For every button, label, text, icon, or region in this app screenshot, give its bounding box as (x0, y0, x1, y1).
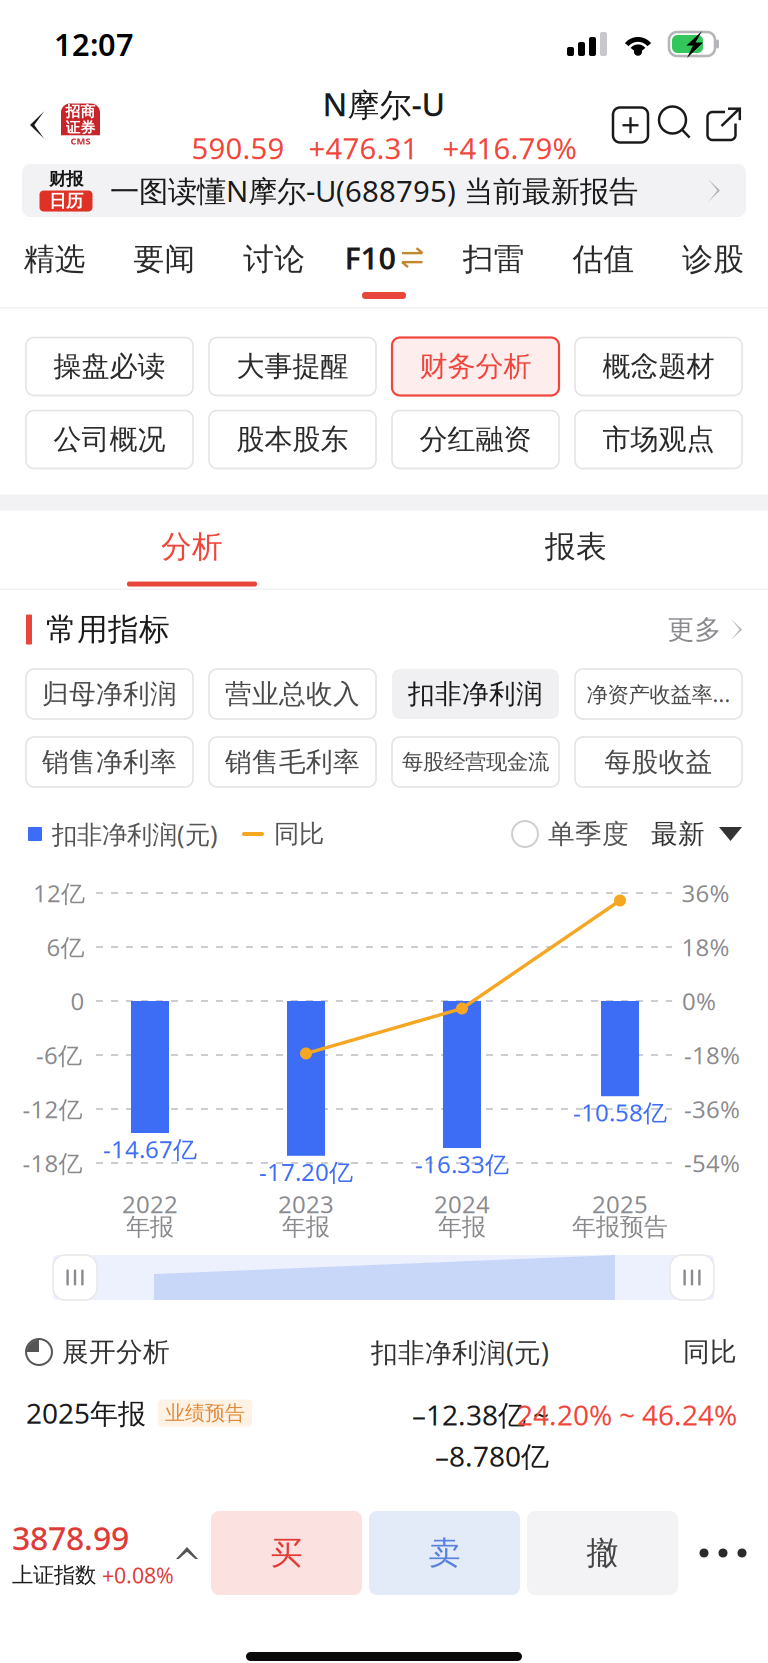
staticText: 市场观点 (602, 422, 714, 457)
staticText: 分析 (161, 528, 223, 565)
staticText: 大事提醒 (236, 349, 348, 384)
button[interactable]: 分红融资 (392, 410, 559, 468)
button[interactable]: 最新 (629, 818, 768, 850)
staticText: +416.79% (442, 128, 576, 167)
button[interactable]: Search (654, 106, 701, 143)
staticText: 最新 (651, 818, 705, 850)
button[interactable]: F10 (329, 221, 439, 307)
staticText: -18亿 (22, 1147, 82, 1179)
staticText: 诊股 (682, 240, 744, 278)
button[interactable]: 操盘必读 (26, 337, 193, 395)
staticText: 36% (681, 877, 729, 909)
staticText: 概念题材 (602, 349, 714, 384)
staticText: N摩尔-U (322, 83, 445, 125)
staticText: 操盘必读 (53, 349, 165, 384)
staticText: 年报 (126, 1212, 174, 1242)
staticText: -10.58亿 (573, 1096, 667, 1128)
staticText: 12:07 (54, 24, 134, 64)
staticText: 0 (70, 985, 84, 1017)
staticText: 公司概况 (53, 422, 165, 457)
button[interactable]: 财报 (22, 164, 746, 217)
staticText: –8.780亿 (435, 1437, 549, 1474)
staticText: 扫雷 (463, 240, 525, 278)
staticText: 年报预告 (572, 1212, 668, 1242)
button[interactable]: 买 (211, 1511, 362, 1595)
staticText: 讨论 (243, 240, 305, 278)
staticText: 销售净利率 (42, 746, 177, 778)
staticText: 上证指数 (12, 1562, 96, 1588)
button[interactable]: 卖 (369, 1511, 520, 1595)
button[interactable]: 市场观点 (575, 410, 742, 468)
button[interactable]: 财务分析 (392, 337, 559, 395)
staticText: -36% (684, 1093, 740, 1125)
button[interactable]: 3878.99 (0, 1499, 198, 1607)
staticText: 净资产收益率... (586, 680, 730, 708)
staticText: 590.59 (191, 128, 284, 167)
staticText: +476.31 (308, 128, 418, 167)
button[interactable]: 销售毛利率 (209, 737, 376, 787)
button[interactable]: 每股经营现金流 (392, 737, 559, 787)
staticText: -6亿 (36, 1039, 82, 1071)
staticText: 同比 (683, 1336, 737, 1368)
button[interactable]: 扣非净利润 (392, 669, 559, 719)
staticText: -16.33亿 (415, 1148, 509, 1180)
staticText: 展开分析 (62, 1336, 170, 1368)
staticText: 要闻 (134, 240, 196, 278)
staticText: 分红融资 (419, 422, 531, 457)
staticText: 更多 (667, 613, 721, 646)
button[interactable]: Back (0, 89, 108, 161)
staticText: 扣非净利润(元) (52, 817, 218, 851)
staticText: -12亿 (22, 1093, 82, 1125)
staticText: 2022 (122, 1188, 178, 1220)
staticText: CMS (70, 135, 90, 147)
staticText: 财务分析 (419, 349, 531, 384)
button[interactable]: 展开分析 (0, 1326, 170, 1378)
button[interactable]: 诊股 (658, 221, 768, 307)
button[interactable]: 讨论 (219, 221, 329, 307)
staticText: -14.67亿 (103, 1133, 197, 1165)
staticText: F10 (344, 237, 396, 278)
button[interactable]: Share (701, 106, 748, 143)
button[interactable]: 股本股东 (209, 410, 376, 468)
button[interactable]: 更多 (667, 613, 768, 646)
button[interactable]: 归母净利润 (26, 669, 193, 719)
staticText: +0.08% (102, 1561, 174, 1589)
staticText: 3878.99 (12, 1517, 129, 1559)
button[interactable]: 分析 (0, 510, 384, 588)
button[interactable]: 要闻 (110, 221, 219, 307)
staticText: 年报 (438, 1212, 486, 1242)
staticText: 2025 (592, 1188, 648, 1220)
button[interactable]: 大事提醒 (209, 337, 376, 395)
button[interactable]: 估值 (549, 221, 658, 307)
staticText: 财报 (49, 168, 83, 190)
staticText: 扣非净利润(元) (371, 1334, 549, 1370)
button[interactable]: 撤 (527, 1511, 678, 1595)
button[interactable]: 销售净利率 (26, 737, 193, 787)
button[interactable]: 净资产收益率... (575, 669, 742, 719)
button[interactable]: 单季度 (512, 818, 629, 850)
button[interactable]: Range end (670, 1255, 714, 1300)
staticText: 证券 (65, 118, 95, 136)
staticText: 精选 (24, 240, 86, 278)
staticText: 每股经营现金流 (402, 749, 549, 775)
staticText: 业绩预告 (165, 1401, 245, 1425)
staticText: -17.20亿 (259, 1156, 353, 1188)
button[interactable]: 扫雷 (439, 221, 549, 307)
staticText: 归母净利润 (42, 678, 177, 710)
staticText: -54% (684, 1147, 740, 1179)
button[interactable]: 公司概况 (26, 410, 193, 468)
staticText: 同比 (274, 818, 324, 849)
staticText: 2024 (434, 1188, 490, 1220)
button[interactable]: 精选 (0, 221, 110, 307)
button[interactable]: Range start (53, 1255, 97, 1300)
staticText: 常用指标 (46, 611, 170, 648)
staticText: 销售毛利率 (225, 746, 360, 778)
button[interactable]: Add to watchlist (607, 106, 654, 143)
staticText: 一图读懂N摩尔-U(688795) 当前最新报告 (110, 171, 638, 210)
button[interactable]: 概念题材 (575, 337, 742, 395)
staticText: –12.38亿 ~ (412, 1396, 549, 1433)
button[interactable]: 报表 (384, 510, 768, 588)
button[interactable]: 营业总收入 (209, 669, 376, 719)
button[interactable]: 每股收益 (575, 737, 742, 787)
button[interactable]: More (678, 1511, 768, 1595)
